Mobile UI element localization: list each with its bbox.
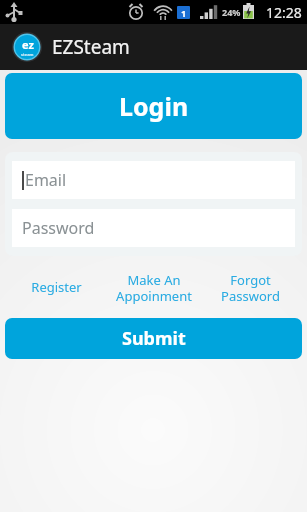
button[interactable]: Register (8, 272, 105, 302)
staticText: 24% (222, 6, 241, 18)
button[interactable]: Email (12, 161, 295, 199)
staticText: Email (25, 169, 67, 191)
staticText: steam (21, 52, 34, 57)
staticText: Submit (122, 326, 186, 351)
button[interactable]: Submit (5, 318, 302, 359)
button[interactable]: Login (5, 73, 302, 139)
button[interactable]: Forgot Password (202, 265, 299, 310)
staticText: 1 (181, 7, 187, 19)
staticText: Register (31, 278, 82, 296)
staticText: EZSteam (52, 34, 130, 60)
button[interactable]: Make An Appoinment (105, 265, 202, 310)
staticText: Password (22, 217, 95, 239)
staticText: Make An Appoinment (116, 271, 192, 304)
button[interactable]: Password (12, 209, 295, 247)
staticText: ez (22, 37, 34, 52)
staticText: 12:28 (266, 3, 302, 22)
staticText: Forgot Password (221, 271, 280, 304)
staticText: Login (119, 89, 189, 123)
